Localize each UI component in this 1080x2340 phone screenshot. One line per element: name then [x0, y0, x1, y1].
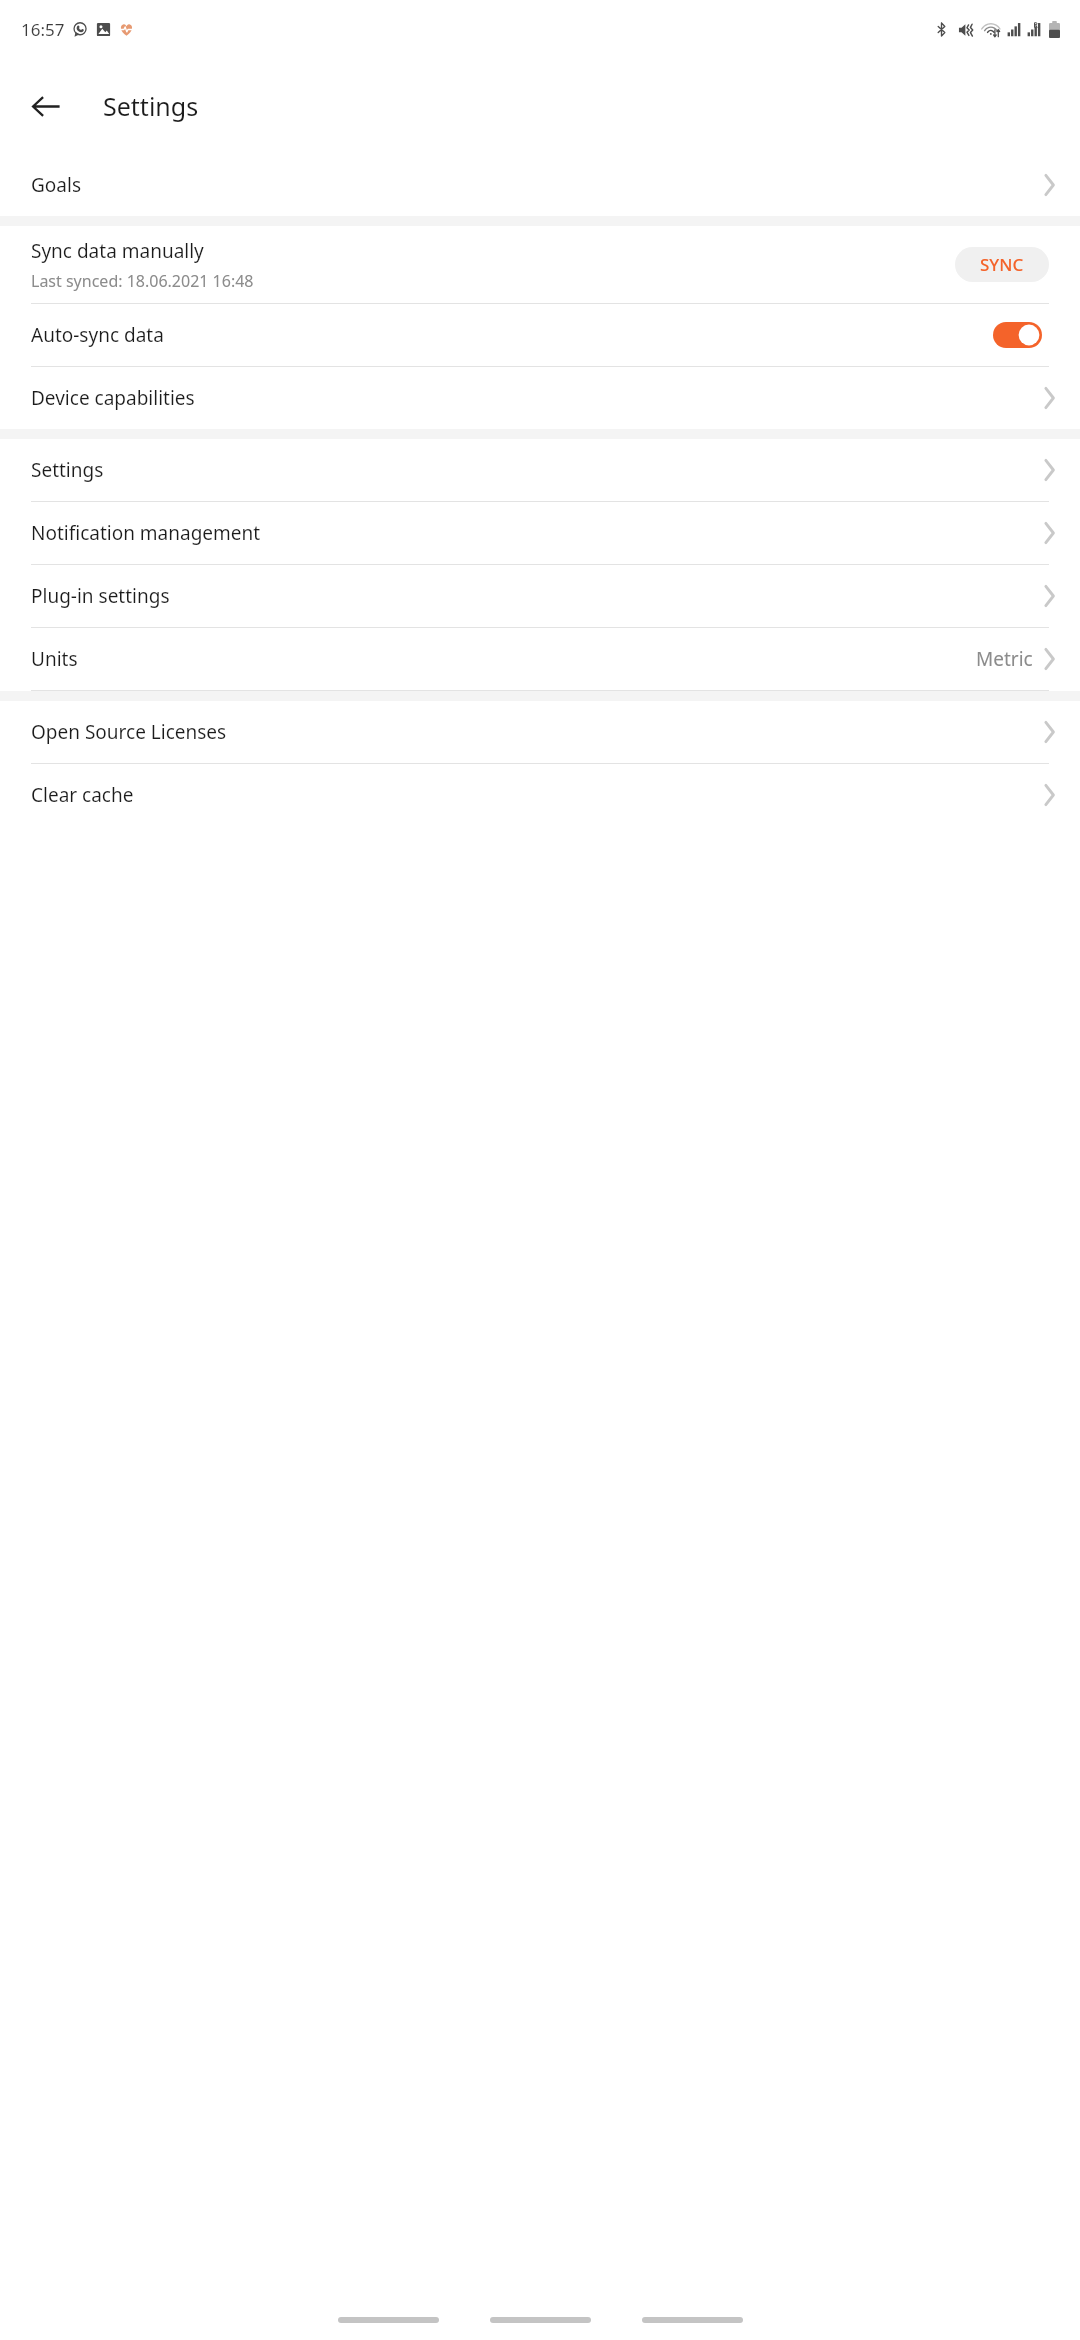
button[interactable]: Goals	[0, 154, 1080, 216]
button[interactable]: Back	[14, 75, 76, 137]
button[interactable]: Home	[490, 2317, 591, 2323]
staticText: Metric	[976, 646, 1033, 672]
button[interactable]: Clear cache	[0, 764, 1080, 826]
staticText: Device capabilities	[31, 385, 195, 411]
button[interactable]: Open Source Licenses	[0, 701, 1080, 763]
button[interactable]: Recents	[338, 2317, 439, 2323]
button[interactable]: SYNC	[955, 247, 1049, 282]
staticText: 16:57	[21, 18, 65, 41]
staticText: SYNC	[980, 253, 1024, 276]
staticText: Plug-in settings	[31, 583, 170, 609]
staticText: Goals	[31, 172, 81, 198]
button[interactable]: Plug-in settings	[0, 565, 1080, 627]
button[interactable]: Device capabilities	[0, 367, 1080, 429]
staticText: Settings	[31, 457, 104, 483]
staticText: Sync data manually	[31, 238, 204, 264]
staticText: Open Source Licenses	[31, 719, 227, 745]
other: Auto-sync toggle	[993, 322, 1042, 348]
button[interactable]: Back	[642, 2317, 743, 2323]
staticText: Settings	[103, 89, 199, 123]
staticText: Units	[31, 646, 78, 672]
staticText: Last synced: 18.06.2021 16:48	[31, 270, 254, 292]
button[interactable]: Notification management	[0, 502, 1080, 564]
staticText: Auto-sync data	[31, 322, 164, 348]
staticText: Notification management	[31, 520, 261, 546]
button[interactable]: Settings	[0, 439, 1080, 501]
button[interactable]: Sync data manually	[0, 226, 1080, 303]
button[interactable]: Auto-sync data	[0, 304, 1080, 366]
staticText: Clear cache	[31, 782, 134, 808]
button[interactable]: Units	[0, 628, 1080, 690]
